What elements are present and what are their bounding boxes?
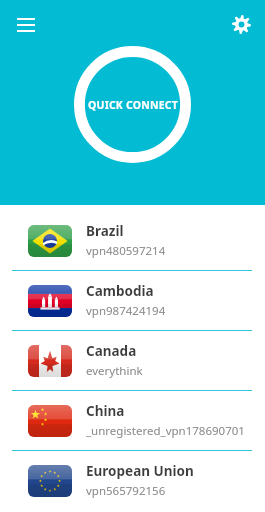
staticText: everythink [86,363,143,379]
staticText: Cambodia [86,282,154,300]
staticText: QUICK CONNECT [88,98,178,112]
button[interactable]: Brazil [0,211,265,270]
staticText: Canada [86,342,137,360]
button[interactable]: Cambodia [0,271,265,330]
button[interactable]: Canada [0,331,265,390]
button[interactable]: Menu [8,7,44,43]
staticText: Brazil [86,222,124,240]
button[interactable]: QUICK CONNECT [74,46,191,163]
staticText: _unregistered_vpn178690701 [86,423,245,439]
staticText: European Union [86,462,194,480]
staticText: vpn987424194 [86,303,166,319]
staticText: China [86,402,125,420]
button[interactable]: China [0,391,265,450]
button[interactable]: European Union [0,451,265,510]
staticText: vpn565792156 [86,483,166,499]
button[interactable]: Settings [223,6,259,42]
staticText: vpn480597214 [86,243,166,259]
